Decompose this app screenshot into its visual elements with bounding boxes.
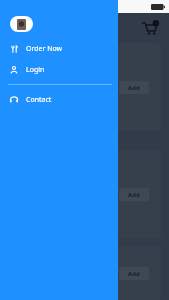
- button[interactable]: Add: [119, 81, 149, 94]
- staticText: Contact: [26, 95, 52, 105]
- button[interactable]: Order Now: [0, 38, 118, 59]
- button[interactable]: Contact: [0, 89, 118, 110]
- button[interactable]: Add: [119, 188, 149, 201]
- staticText: Login: [26, 65, 45, 75]
- staticText: Add: [128, 270, 140, 278]
- button[interactable]: Add: [119, 267, 149, 280]
- other: Cart: [141, 20, 157, 36]
- button[interactable]: Add: [8, 43, 161, 131]
- staticText: Order Now: [26, 44, 63, 54]
- staticText: Add: [128, 84, 140, 92]
- button[interactable]: Add: [8, 150, 161, 238]
- button[interactable]: Add: [8, 246, 161, 300]
- staticText: Add: [128, 191, 140, 199]
- button[interactable]: Login: [0, 59, 118, 80]
- button[interactable]: [10, 16, 33, 32]
